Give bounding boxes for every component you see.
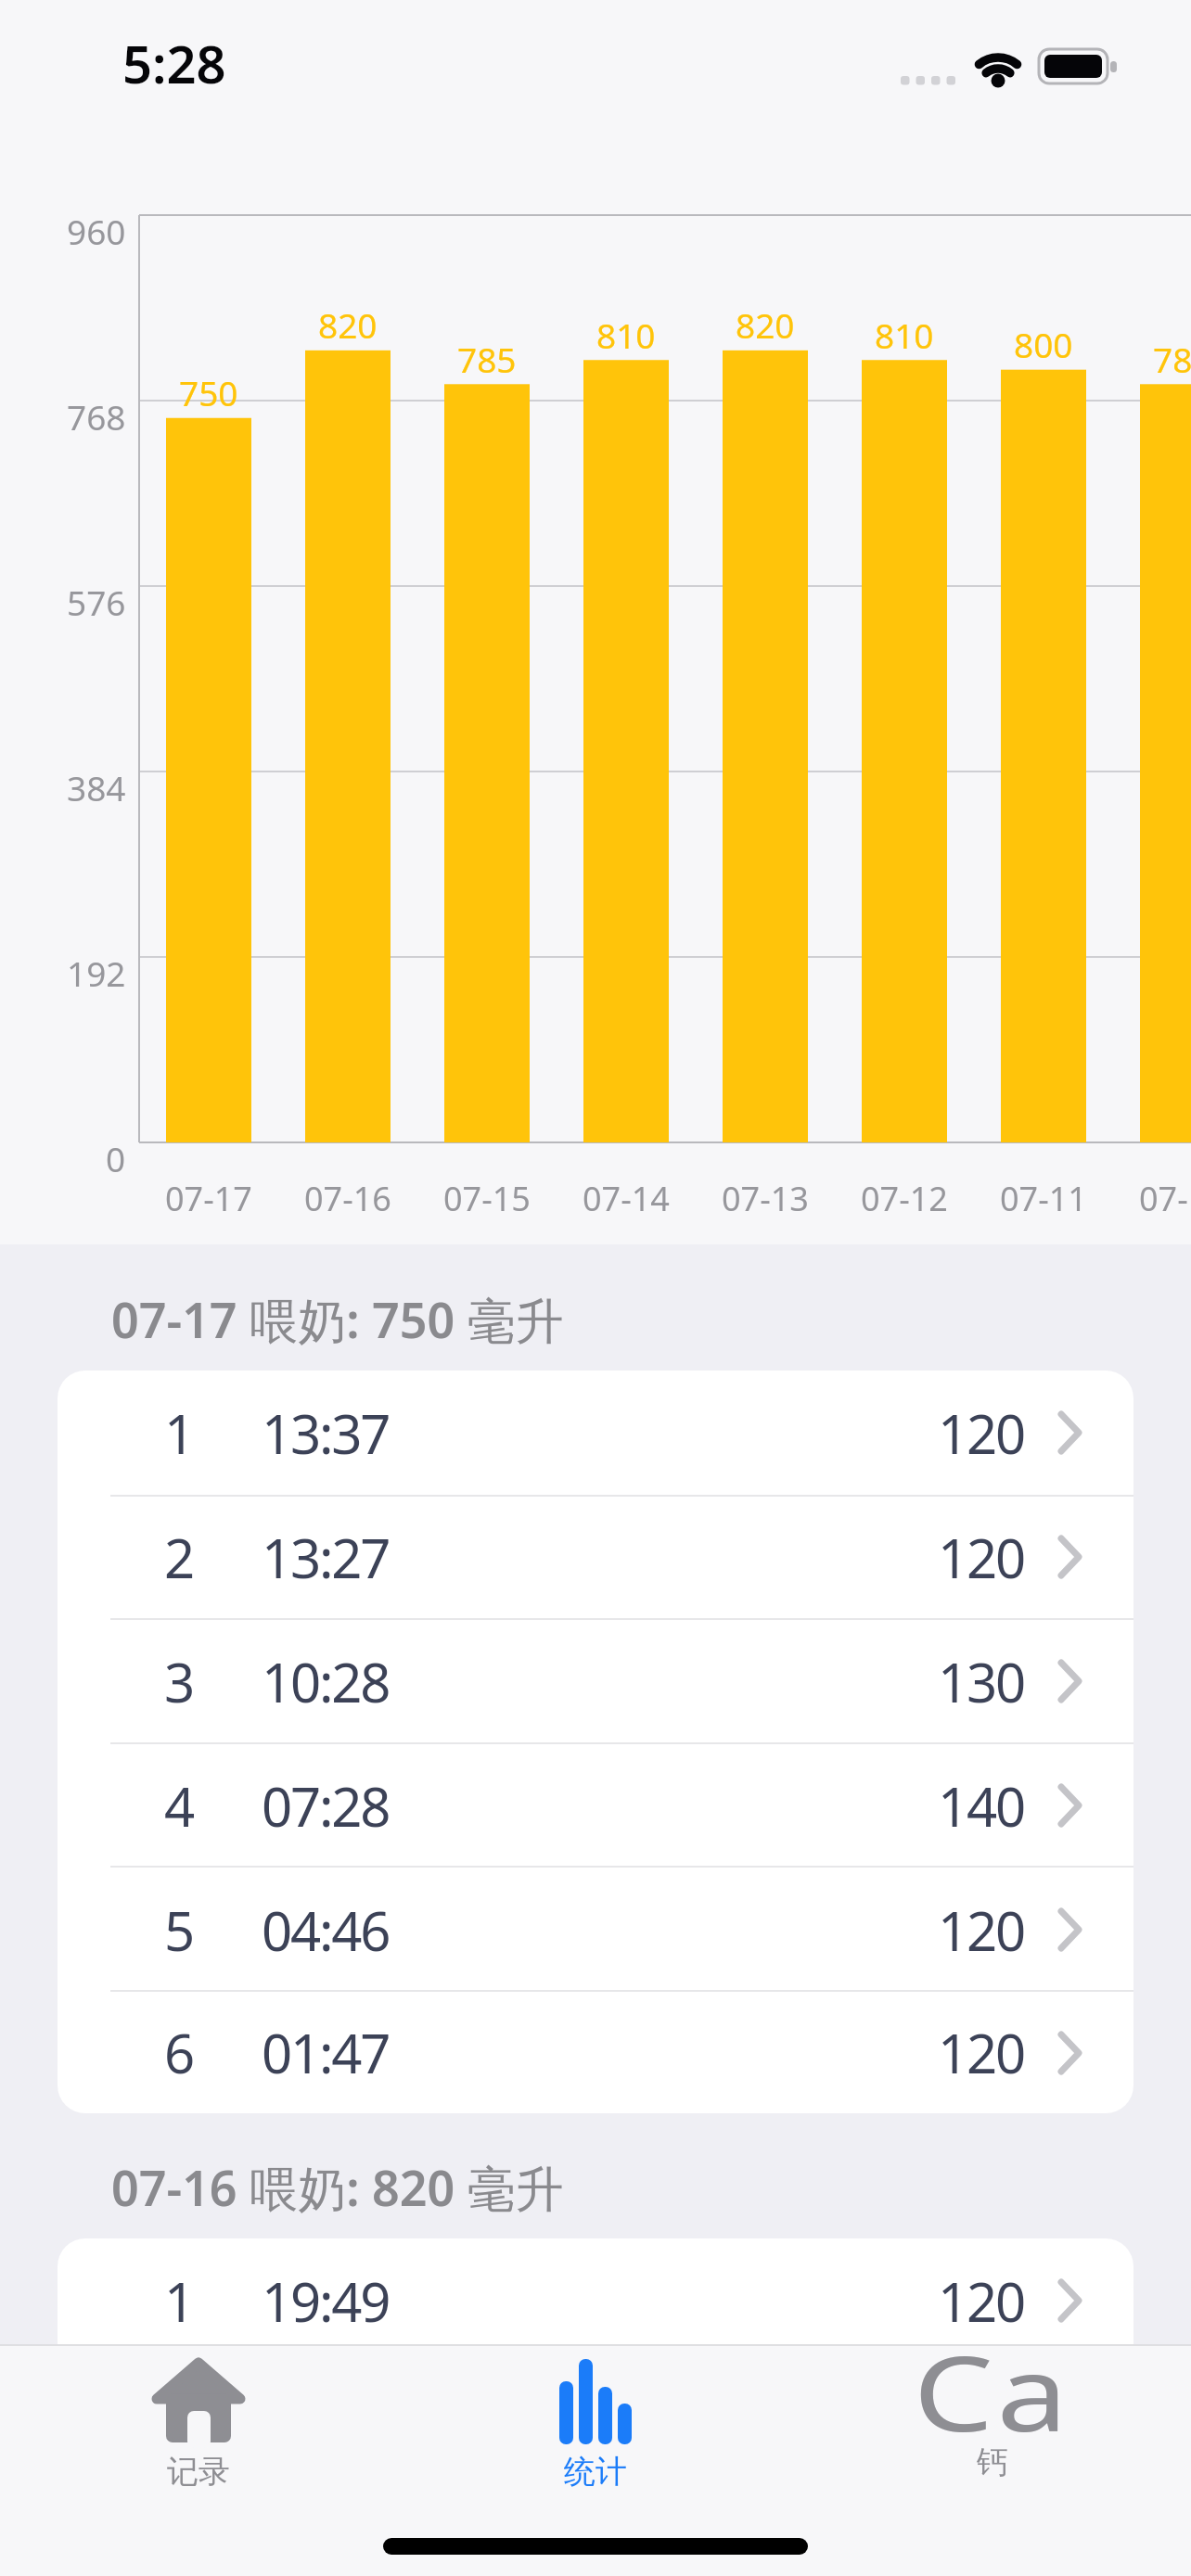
staticText: 800 (1014, 321, 1073, 367)
staticText: 810 (875, 312, 934, 358)
button[interactable]: 6 (58, 1992, 1133, 2113)
button[interactable]: 3 (58, 1619, 1133, 1743)
staticText: 07-13 (722, 1176, 809, 1221)
staticText: 13:37 (262, 1396, 390, 1470)
staticText: 07:28 (262, 1769, 390, 1843)
staticText: 07-16 (304, 1176, 391, 1221)
staticText: 785 (457, 336, 517, 382)
staticText: 120 (938, 2389, 1024, 2462)
staticText: 07-11 (1000, 1176, 1087, 1221)
button[interactable]: 5 (58, 1868, 1133, 1992)
button[interactable]: 2 (58, 1495, 1133, 1619)
staticText: 120 (938, 1894, 1024, 1967)
staticText: 960 (67, 208, 126, 254)
staticText: 140 (938, 1769, 1024, 1843)
staticText: 0 (106, 1135, 126, 1181)
button[interactable]: 1 (58, 2238, 1133, 2363)
staticText: 120 (938, 2016, 1024, 2089)
staticText: 01:47 (262, 2016, 390, 2089)
staticText: 750 (179, 369, 238, 415)
staticText: 4 (164, 1769, 193, 1843)
staticText: 19:49 (262, 2264, 390, 2338)
staticText: 1 (164, 2264, 193, 2338)
button[interactable]: Ca (890, 2344, 1095, 2516)
staticText: 07-17 喂奶: 750 毫升 (111, 1286, 564, 1352)
staticText: 04:46 (262, 1894, 390, 1967)
staticText: 07-15 (443, 1176, 531, 1221)
staticText: 384 (67, 764, 126, 810)
staticText: 2 (164, 2389, 193, 2462)
staticText: 5:28 (122, 28, 226, 98)
staticText: 5 (164, 1894, 193, 1967)
button[interactable]: 4 (58, 1743, 1133, 1868)
staticText: 576 (67, 579, 126, 625)
staticText: 810 (596, 312, 656, 358)
staticText: 768 (67, 393, 126, 440)
staticText: 2 (164, 1521, 193, 1594)
button[interactable]: 记录 (96, 2348, 301, 2515)
staticText: 07-10 (1139, 1176, 1191, 1221)
staticText: 120 (938, 2264, 1024, 2338)
staticText: 192 (67, 950, 126, 996)
staticText: 统计 (564, 2452, 627, 2492)
staticText: 3 (164, 1645, 193, 1718)
staticText: 6 (164, 2016, 193, 2089)
staticText: 记录 (167, 2452, 230, 2492)
staticText: 10:28 (262, 1645, 390, 1718)
button[interactable]: 2 (58, 2363, 1133, 2487)
staticText: 钙 (977, 2442, 1008, 2482)
staticText: 120 (938, 1396, 1024, 1470)
button[interactable]: 1 (58, 1371, 1133, 1495)
staticText: 13:27 (262, 1521, 390, 1594)
staticText: 120 (938, 1521, 1024, 1594)
staticText: 07-14 (583, 1176, 670, 1221)
staticText: 130 (938, 1645, 1024, 1718)
staticText: 1 (164, 1396, 193, 1470)
staticText: 820 (318, 301, 378, 348)
staticText: 820 (736, 301, 795, 348)
button[interactable]: 统计 (493, 2348, 698, 2515)
staticText: 07-17 (165, 1176, 252, 1221)
staticText: Ca (913, 2320, 1072, 2462)
staticText: 07-16 喂奶: 820 毫升 (111, 2154, 564, 2220)
staticText: 785 (1153, 336, 1191, 382)
staticText: 07-12 (861, 1176, 948, 1221)
